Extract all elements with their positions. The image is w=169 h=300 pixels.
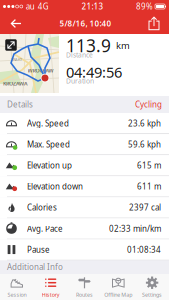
staticText: Calories [27,202,57,213]
staticText: 4G [38,1,49,12]
staticText: Elevation up [27,160,72,171]
staticText: Additional Info [7,261,63,272]
staticText: 59.6 kph [128,139,161,150]
staticText: Distance [66,51,93,59]
staticText: 21:13 [81,1,103,12]
staticText: Settings [142,291,162,298]
button[interactable]: Back [2,13,30,34]
staticText: Routes [76,291,93,298]
staticText: Duration [66,77,94,85]
button[interactable]: Session [0,274,34,300]
staticText: 04:49:56 [66,62,122,82]
staticText: KROZAWA [3,80,28,87]
staticText: Avg. Pace [27,223,63,234]
staticText: 615 m [137,160,161,171]
button[interactable]: History [34,274,68,300]
staticText: 113.9 [66,34,111,57]
staticText: TRAKT [11,57,22,62]
staticText: History [42,291,60,298]
staticText: Pause [27,244,50,255]
staticText: 02:33 min/km [109,223,161,234]
staticText: 89% [136,1,153,12]
staticText: 23.6 kph [128,118,161,129]
staticText: WROCŁAW [27,67,53,74]
staticText: 01:08:34 [127,244,161,255]
staticText: Max. Speed [27,139,70,150]
staticText: 2397 cal [129,202,161,213]
staticText: 611 m [137,181,161,192]
button[interactable]: Settings [135,274,169,300]
staticText: Offline Map [104,291,132,298]
staticText: Cycling [135,99,162,110]
staticText: au [26,1,35,12]
staticText: 5/8/16, 10:40 [59,18,111,29]
button[interactable]: Offline Map [101,274,135,300]
staticText: Elevation down [27,181,83,192]
staticText: Details [7,99,33,110]
staticText: Session [7,291,26,298]
button[interactable]: Routes [68,274,101,300]
staticText: Avg. Speed [27,118,69,129]
button[interactable]: Share [141,13,167,34]
staticText: km [116,39,130,52]
